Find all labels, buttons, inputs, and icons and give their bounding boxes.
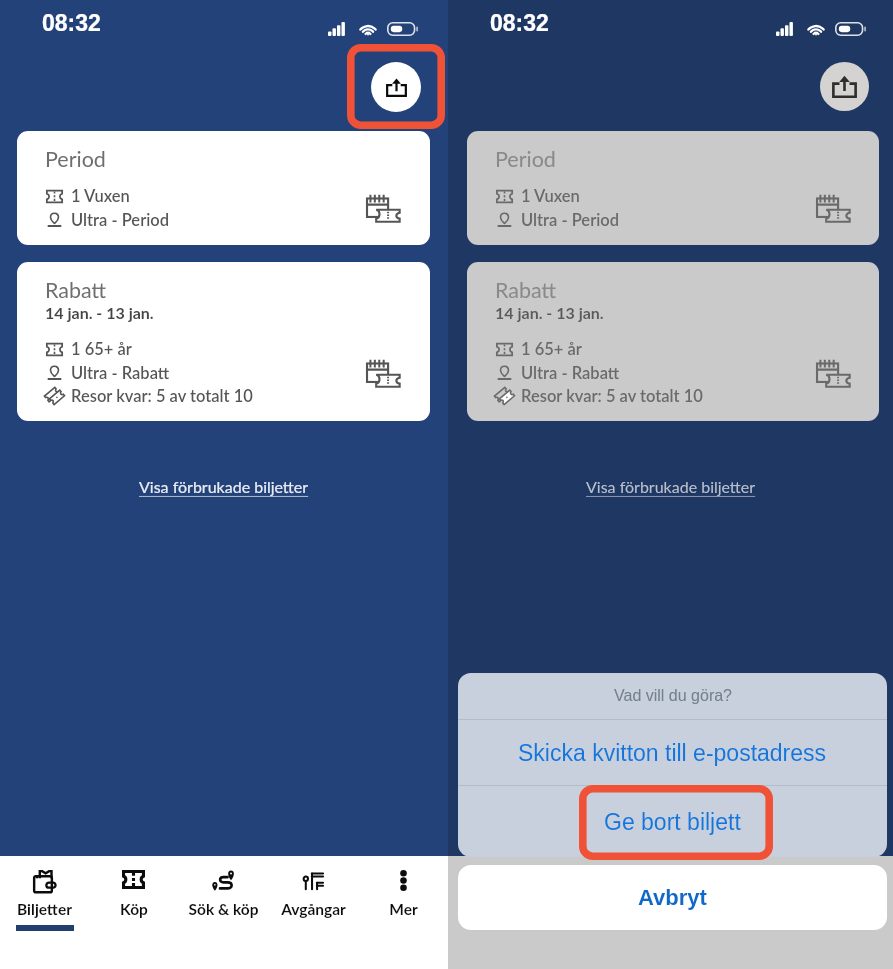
button[interactable]: Mer bbox=[358, 856, 448, 969]
staticText: Vad vill du göra? bbox=[614, 687, 732, 705]
button[interactable]: Avgångar bbox=[268, 856, 358, 969]
button[interactable]: Skicka kvitton till e-postadress bbox=[458, 720, 887, 785]
staticText: Ultra - Rabatt bbox=[71, 363, 170, 383]
staticText: Avbryt bbox=[638, 885, 707, 910]
staticText: Ultra - Rabatt bbox=[521, 363, 620, 383]
staticText: Sök & köp bbox=[188, 900, 259, 919]
staticText: Resor kvar: 5 av totalt 10 bbox=[71, 386, 253, 406]
button[interactable]: Period bbox=[467, 131, 879, 245]
staticText: 08:32 bbox=[490, 10, 549, 36]
staticText: Avgångar bbox=[281, 900, 346, 919]
staticText: Mer bbox=[389, 900, 418, 919]
staticText: Period bbox=[45, 146, 106, 172]
staticText: Rabatt bbox=[495, 277, 557, 303]
staticText: 1 Vuxen bbox=[71, 186, 130, 206]
button[interactable]: Visa förbrukade biljetter bbox=[578, 473, 764, 500]
button[interactable]: Sök & köp bbox=[178, 856, 268, 969]
staticText: 08:32 bbox=[42, 10, 101, 36]
button[interactable]: Share bbox=[820, 62, 869, 111]
staticText: Köp bbox=[120, 900, 148, 919]
staticText: 14 jan. - 13 jan. bbox=[495, 303, 604, 322]
button[interactable]: Share bbox=[371, 62, 421, 112]
button[interactable]: Period bbox=[17, 131, 430, 245]
button[interactable]: Avbryt bbox=[458, 865, 887, 930]
button[interactable]: Biljetter bbox=[0, 856, 89, 969]
staticText: Skicka kvitton till e-postadress bbox=[518, 740, 827, 766]
button[interactable]: Ge bort biljett bbox=[458, 786, 887, 857]
staticText: Visa förbrukade biljetter bbox=[586, 477, 756, 496]
staticText: Rabatt bbox=[45, 277, 107, 303]
button[interactable]: Rabatt bbox=[17, 262, 430, 421]
staticText: 1 Vuxen bbox=[521, 186, 580, 206]
staticText: Biljetter bbox=[17, 900, 72, 919]
staticText: Visa förbrukade biljetter bbox=[139, 477, 309, 496]
staticText: 14 jan. - 13 jan. bbox=[45, 303, 154, 322]
button[interactable]: Visa förbrukade biljetter bbox=[131, 473, 317, 500]
staticText: 1 65+ år bbox=[521, 339, 582, 359]
staticText: 1 65+ år bbox=[71, 339, 132, 359]
button[interactable]: Rabatt bbox=[467, 262, 879, 421]
staticText: Ultra - Period bbox=[71, 210, 170, 230]
staticText: Ultra - Period bbox=[521, 210, 620, 230]
button[interactable]: Köp bbox=[89, 856, 178, 969]
staticText: Ge bort biljett bbox=[604, 809, 741, 835]
staticText: Resor kvar: 5 av totalt 10 bbox=[521, 386, 703, 406]
staticText: Period bbox=[495, 146, 556, 172]
